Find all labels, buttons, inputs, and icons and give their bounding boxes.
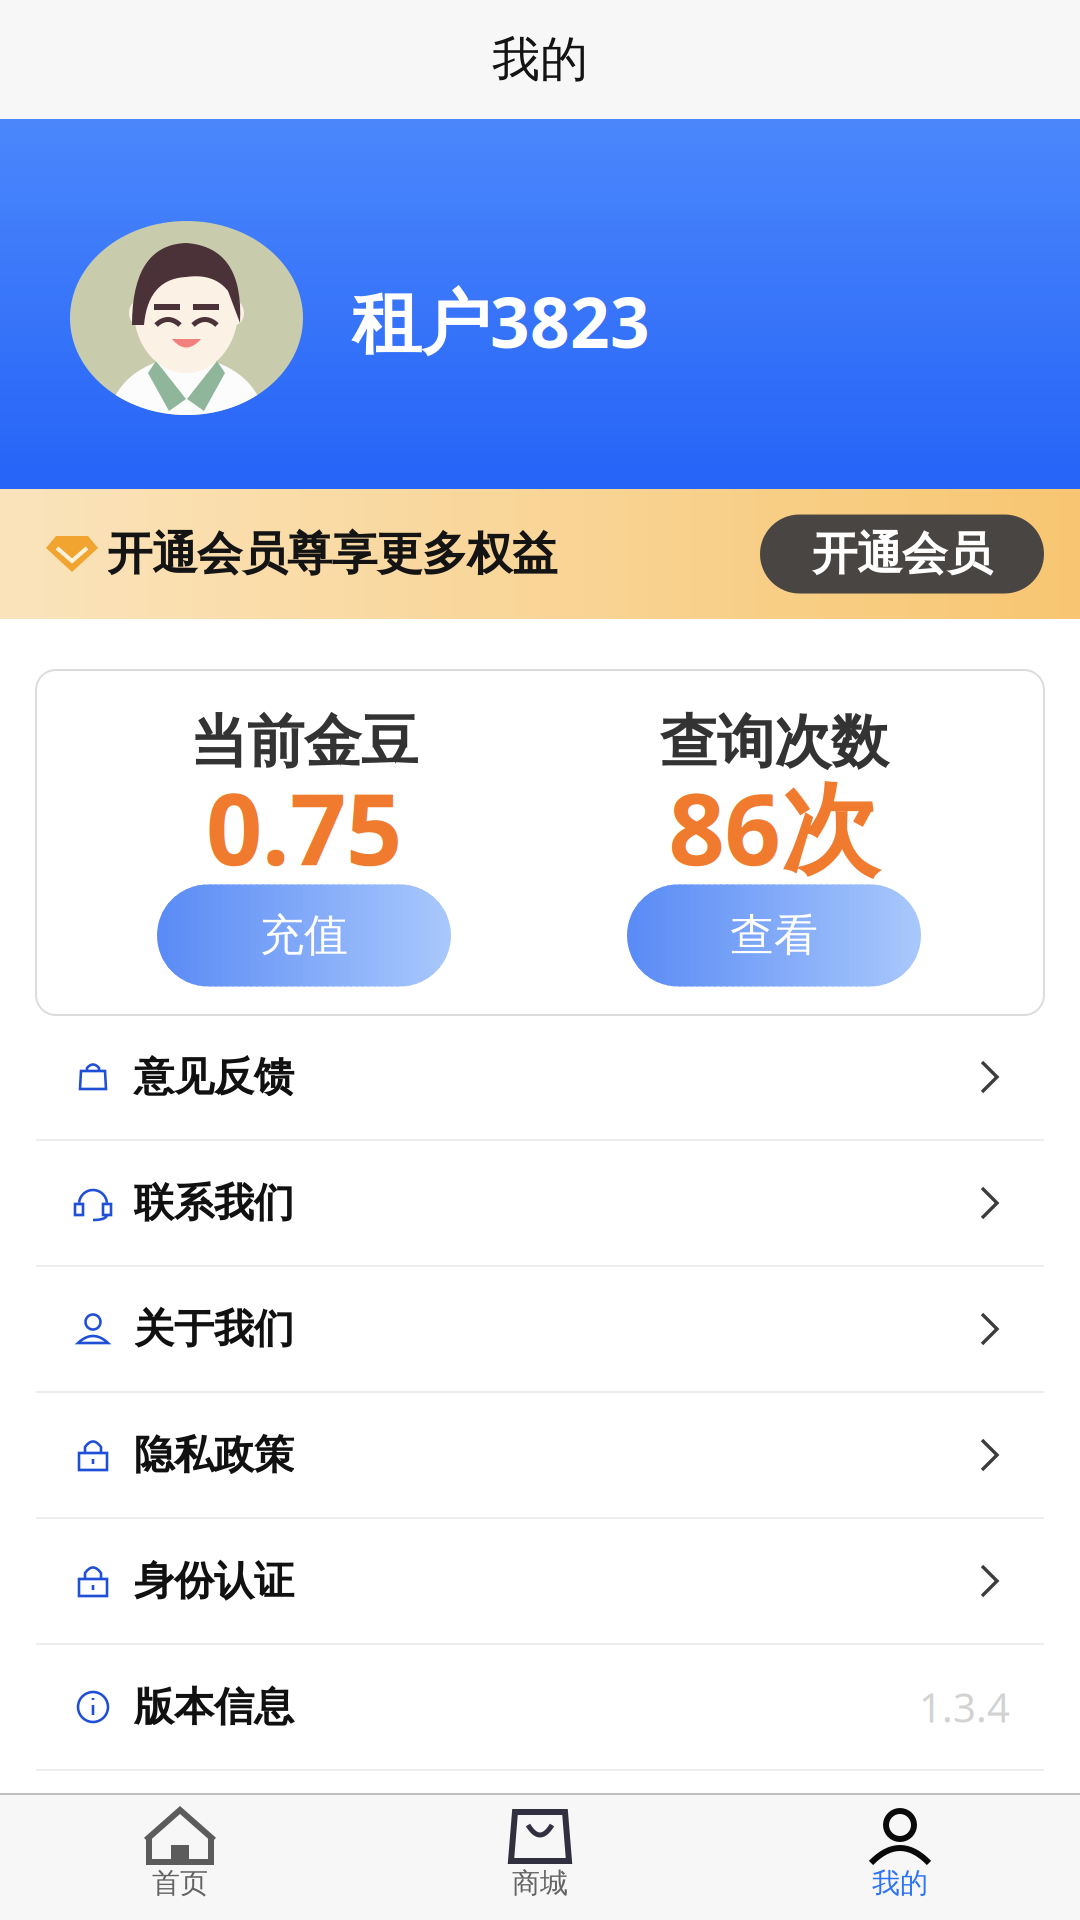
staticText: 86次 xyxy=(668,761,879,892)
staticText: 意见反馈 xyxy=(134,1052,294,1101)
button[interactable]: 商城 xyxy=(360,1795,720,1920)
staticText: 当前金豆 xyxy=(190,707,418,777)
staticText: 充值 xyxy=(260,908,348,962)
staticText: 查询次数 xyxy=(660,707,888,777)
staticText: 0.75 xyxy=(206,761,402,892)
staticText: 版本信息 xyxy=(134,1682,294,1731)
button[interactable]: 意见反馈 xyxy=(0,1015,1080,1139)
staticText: 身份认证 xyxy=(134,1556,294,1605)
staticText: 我的 xyxy=(492,30,588,89)
staticText: 1.3.4 xyxy=(919,1680,1010,1733)
button[interactable]: 身份认证 xyxy=(0,1519,1080,1643)
staticText: 商城 xyxy=(512,1866,568,1900)
button[interactable]: 开通会员 xyxy=(760,514,1044,593)
button[interactable]: 联系我们 xyxy=(0,1141,1080,1265)
button[interactable]: 查看 xyxy=(627,884,921,986)
staticText: 查看 xyxy=(730,908,818,962)
button[interactable]: 我的 xyxy=(720,1795,1080,1920)
button[interactable]: 充值 xyxy=(157,884,451,986)
staticText: 联系我们 xyxy=(134,1178,294,1227)
button[interactable]: 关于我们 xyxy=(0,1267,1080,1391)
staticText: 我的 xyxy=(872,1866,928,1900)
button[interactable]: 首页 xyxy=(0,1795,360,1920)
staticText: 开通会员 xyxy=(812,526,992,582)
staticText: 隐私政策 xyxy=(134,1430,294,1479)
staticText: 租户3823 xyxy=(352,275,650,367)
staticText: 首页 xyxy=(152,1866,208,1900)
staticText: 关于我们 xyxy=(134,1304,294,1353)
button[interactable]: 版本信息 xyxy=(0,1645,1080,1769)
button[interactable]: 隐私政策 xyxy=(0,1393,1080,1517)
staticText: 开通会员尊享更多权益 xyxy=(107,526,557,582)
